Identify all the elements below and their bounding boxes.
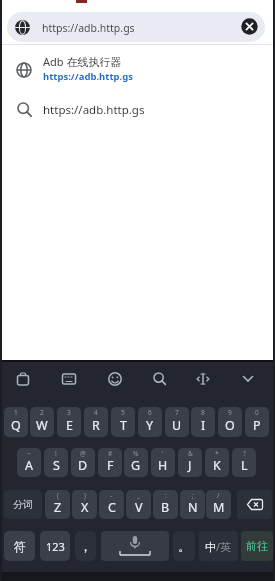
staticText: W [36, 417, 48, 434]
button[interactable] [237, 490, 272, 519]
staticText: S [53, 457, 60, 474]
button[interactable]: ~ [17, 448, 41, 477]
button[interactable]: 4 [84, 407, 108, 437]
button[interactable]: 6 [138, 407, 162, 437]
staticText: P [253, 417, 261, 434]
staticText: U [172, 417, 182, 434]
staticText: ~ [27, 449, 31, 458]
button[interactable]: Adb 在线执行器 [0, 45, 275, 90]
staticText: 6 [148, 408, 152, 417]
staticText: X [81, 499, 89, 516]
staticText: # [108, 449, 113, 458]
button[interactable]: - [99, 490, 124, 519]
staticText: : [165, 491, 167, 500]
staticText: 分词 [13, 498, 33, 511]
staticText: 前往 [246, 539, 268, 553]
button[interactable]: 5 [111, 407, 135, 437]
button[interactable]: https://adb.http.gs [7, 12, 265, 42]
staticText: 0 [255, 408, 259, 417]
staticText: N [188, 499, 198, 516]
button[interactable]: ( [45, 490, 70, 519]
button[interactable]: ; [180, 490, 205, 519]
staticText: - [110, 491, 113, 500]
staticText: F [107, 457, 114, 474]
button[interactable]: _ [126, 490, 151, 519]
button[interactable]: 1 [4, 407, 28, 437]
staticText: 1 [14, 408, 18, 417]
staticText: _ [137, 491, 140, 500]
staticText: 。 [178, 538, 191, 554]
staticText: @ [80, 449, 86, 458]
staticText: https://adb.http.gs [42, 21, 135, 35]
button[interactable]: ， [75, 531, 96, 561]
staticText: A [25, 457, 33, 474]
staticText: ' [162, 449, 164, 458]
staticText: G [131, 457, 141, 474]
staticText: Z [54, 499, 62, 516]
staticText: J [188, 457, 192, 474]
staticText: 3 [67, 408, 71, 417]
button[interactable]: https://adb.http.gs [0, 90, 275, 130]
staticText: 9 [228, 408, 232, 417]
button[interactable]: 123 [40, 531, 70, 561]
staticText: O [225, 417, 235, 434]
staticText: Adb 在线执行器 [43, 54, 122, 69]
staticText: B [161, 499, 170, 516]
staticText: / [217, 491, 220, 500]
staticText: E [66, 417, 73, 434]
staticText: 8 [201, 408, 205, 417]
button[interactable]: 7 [165, 407, 189, 437]
staticText: L [241, 457, 248, 474]
button[interactable]: 。 [173, 531, 195, 561]
button[interactable]: 分词 [4, 490, 42, 519]
staticText: Y [146, 417, 154, 434]
button[interactable]: 9 [218, 407, 242, 437]
staticText: ， [79, 538, 92, 554]
staticText: & [188, 449, 193, 458]
button[interactable]: 符 [4, 531, 35, 561]
button[interactable]: * [205, 448, 229, 477]
staticText: 5 [121, 408, 125, 417]
staticText: K [213, 457, 221, 474]
staticText: 123 [46, 539, 65, 554]
button[interactable]: : [153, 490, 178, 519]
button[interactable]: ! [44, 448, 68, 477]
button[interactable]: & [178, 448, 202, 477]
staticText: V [135, 499, 143, 516]
staticText: R [92, 417, 100, 434]
staticText: ; [192, 491, 194, 500]
button[interactable]: 3 [57, 407, 81, 437]
button[interactable]: ? [232, 448, 256, 477]
button[interactable]: % [124, 448, 148, 477]
staticText: ! [55, 449, 57, 458]
staticText: H [158, 457, 168, 474]
staticText: 中/英 [205, 539, 232, 554]
staticText: T [120, 417, 127, 434]
staticText: https://adb.http.gs [43, 102, 145, 118]
button[interactable]: 中/英 [199, 531, 238, 561]
button[interactable] [101, 531, 169, 561]
button[interactable]: 2 [30, 407, 54, 437]
button[interactable]: @ [71, 448, 95, 477]
button[interactable]: # [98, 448, 122, 477]
staticText: I [201, 417, 206, 434]
button[interactable]: 8 [191, 407, 215, 437]
staticText: D [78, 457, 88, 474]
staticText: * [215, 449, 219, 458]
button[interactable]: / [206, 490, 231, 519]
staticText: 7 [175, 408, 179, 417]
staticText: ? [243, 449, 246, 458]
button[interactable]: 前往 [241, 531, 273, 561]
staticText: Q [11, 417, 21, 434]
button[interactable]: ) [72, 490, 97, 519]
staticText: 2 [40, 408, 44, 417]
staticText: ) [84, 491, 86, 500]
staticText: 符 [14, 539, 26, 554]
staticText: https://adb.http.gs [43, 70, 133, 83]
staticText: M [213, 499, 225, 516]
staticText: % [133, 449, 139, 458]
staticText: C [108, 499, 116, 516]
button[interactable]: 0 [245, 407, 269, 437]
button[interactable]: ' [151, 448, 175, 477]
staticText: 4 [94, 408, 98, 417]
